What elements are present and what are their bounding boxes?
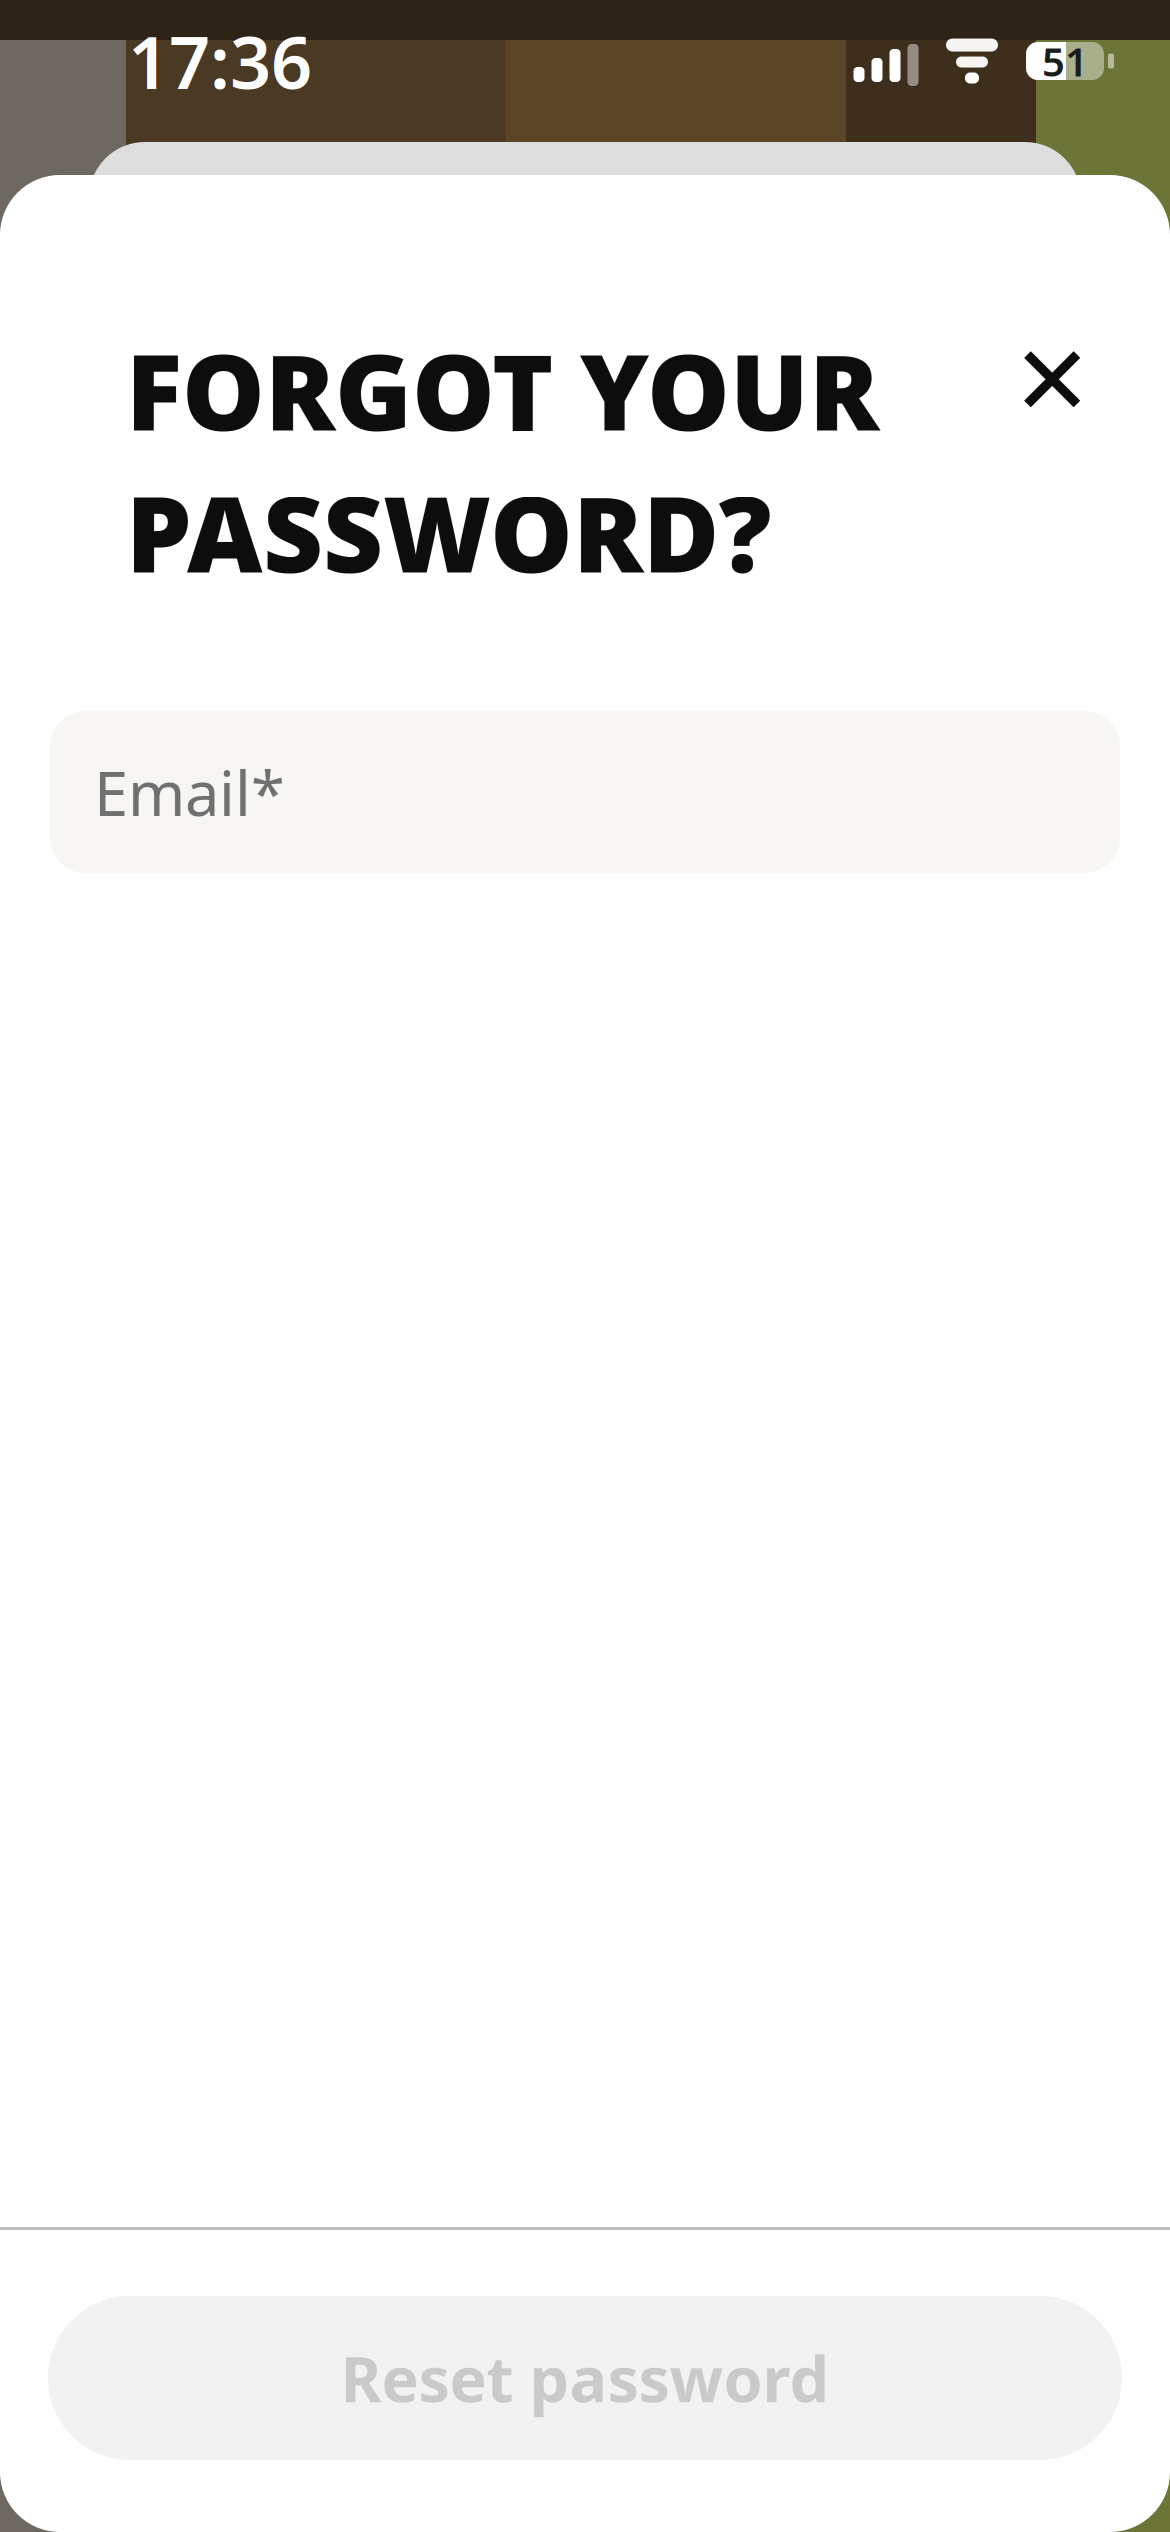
staticText: 51 xyxy=(1042,34,1088,87)
staticText: FORGOT YOUR xyxy=(126,321,879,459)
staticText: 17:36 xyxy=(128,13,312,109)
button[interactable]: Email* xyxy=(50,711,1120,873)
staticText: Email* xyxy=(94,751,285,833)
staticText: ✕ xyxy=(1012,326,1092,435)
button[interactable]: Reset password xyxy=(48,2296,1122,2460)
button[interactable]: Close xyxy=(992,321,1112,441)
staticText: Reset password xyxy=(340,2336,829,2420)
staticText: PASSWORD? xyxy=(126,463,772,601)
